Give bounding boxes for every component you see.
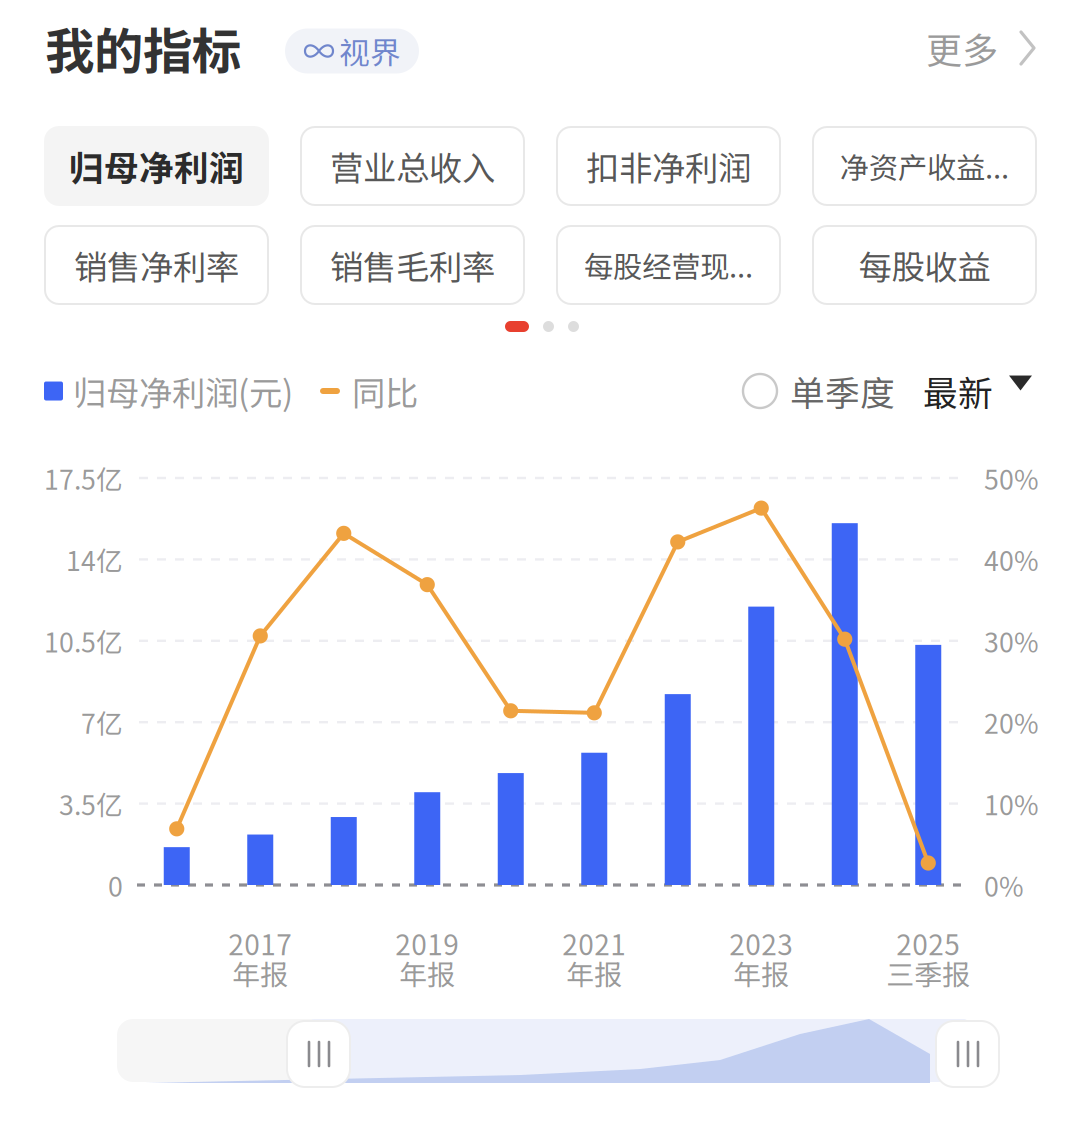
staticText: 2021 xyxy=(562,923,626,963)
button[interactable]: 更多 xyxy=(926,22,1036,74)
staticText: 3.5亿 xyxy=(59,784,123,823)
staticText: 2025 xyxy=(896,923,960,963)
staticText: 50% xyxy=(984,459,1039,497)
staticText: 最新 xyxy=(923,366,993,416)
staticText: 10% xyxy=(984,784,1039,823)
staticText: 2019 xyxy=(395,923,459,963)
button[interactable]: 净资产收益... xyxy=(813,127,1036,205)
staticText: 每股收益 xyxy=(858,241,990,289)
button[interactable]: 最新 xyxy=(895,366,1032,416)
staticText: 0% xyxy=(984,866,1024,904)
staticText: 30% xyxy=(984,621,1039,660)
button[interactable]: 销售净利率 xyxy=(45,226,268,304)
staticText: 净资产收益... xyxy=(840,145,1009,187)
staticText: 销售毛利率 xyxy=(330,241,495,289)
staticText: 17.5亿 xyxy=(44,459,123,497)
staticText: 三季报 xyxy=(886,953,970,993)
button[interactable]: 扣非净利润 xyxy=(557,127,780,205)
button[interactable]: Adjust range xyxy=(936,1021,999,1087)
button[interactable]: 单季度 xyxy=(743,366,895,416)
staticText: 0 xyxy=(108,866,123,904)
staticText: 年报 xyxy=(232,953,288,993)
staticText: 7亿 xyxy=(81,703,123,741)
staticText: 20% xyxy=(984,703,1039,741)
staticText: 单季度 xyxy=(790,366,895,416)
staticText: 归母净利润 xyxy=(69,141,244,191)
button[interactable]: 营业总收入 xyxy=(301,127,524,205)
staticText: 2023 xyxy=(729,923,793,963)
staticText: 扣非净利润 xyxy=(586,142,751,190)
staticText: 年报 xyxy=(399,953,455,993)
button[interactable]: Adjust range xyxy=(287,1021,350,1087)
staticText: 我的指标 xyxy=(45,12,241,84)
button[interactable]: 归母净利润 xyxy=(45,127,268,205)
staticText: 年报 xyxy=(566,953,622,993)
staticText: 年报 xyxy=(733,953,789,993)
staticText: 每股经营现... xyxy=(584,244,753,286)
staticText: 归母净利润(元) xyxy=(73,367,293,415)
staticText: 2017 xyxy=(228,923,292,963)
staticText: 10.5亿 xyxy=(44,621,123,660)
staticText: 销售净利率 xyxy=(74,241,239,289)
staticText: 视界 xyxy=(339,29,401,73)
staticText: 营业总收入 xyxy=(330,142,495,190)
button[interactable]: 销售毛利率 xyxy=(301,226,524,304)
staticText: 14亿 xyxy=(66,540,123,579)
staticText: 更多 xyxy=(926,22,998,74)
staticText: 40% xyxy=(984,540,1039,579)
staticText: 同比 xyxy=(352,367,418,415)
button[interactable]: 每股经营现... xyxy=(557,226,780,304)
button[interactable]: 每股收益 xyxy=(813,226,1036,304)
